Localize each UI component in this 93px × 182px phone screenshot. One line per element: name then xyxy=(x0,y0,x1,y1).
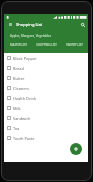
button[interactable]: Health Drink xyxy=(4,93,88,103)
staticText: Butter xyxy=(13,76,25,81)
button[interactable]: PANTRY LIST xyxy=(60,41,88,49)
button[interactable]: SHOPPING LIST xyxy=(32,41,60,49)
staticText: Health Drink xyxy=(13,96,37,101)
button[interactable]: Milk xyxy=(4,103,88,113)
staticText: Cleaners xyxy=(13,86,29,91)
staticText: Apples, Mangoes, Vegetables xyxy=(10,34,52,38)
staticText: Shopping List xyxy=(16,22,43,28)
button[interactable]: MASTER LIST xyxy=(4,41,32,49)
button[interactable]: Bread xyxy=(4,63,88,73)
staticText: Sandwich xyxy=(13,116,31,121)
button[interactable]: Open navigation menu xyxy=(4,18,16,31)
button[interactable]: Search xyxy=(77,18,88,31)
button[interactable]: Tooth Paste xyxy=(4,133,88,143)
staticText: MASTER LIST xyxy=(10,43,27,47)
staticText: PANTRY LIST xyxy=(66,43,83,47)
button[interactable]: Black Pepper xyxy=(4,53,88,63)
staticText: SHOPPING LIST xyxy=(36,43,57,47)
staticText: Tooth Paste xyxy=(13,136,35,141)
staticText: Milk xyxy=(13,106,21,111)
staticText: Tea xyxy=(13,126,20,131)
staticText: Bread xyxy=(13,66,24,71)
button[interactable]: Butter xyxy=(4,73,88,83)
button[interactable]: Add item xyxy=(70,143,82,155)
button[interactable]: Cleaners xyxy=(4,83,88,93)
button[interactable]: Tea xyxy=(4,123,88,133)
button[interactable]: Sandwich xyxy=(4,113,88,123)
staticText: Black Pepper xyxy=(13,56,37,61)
